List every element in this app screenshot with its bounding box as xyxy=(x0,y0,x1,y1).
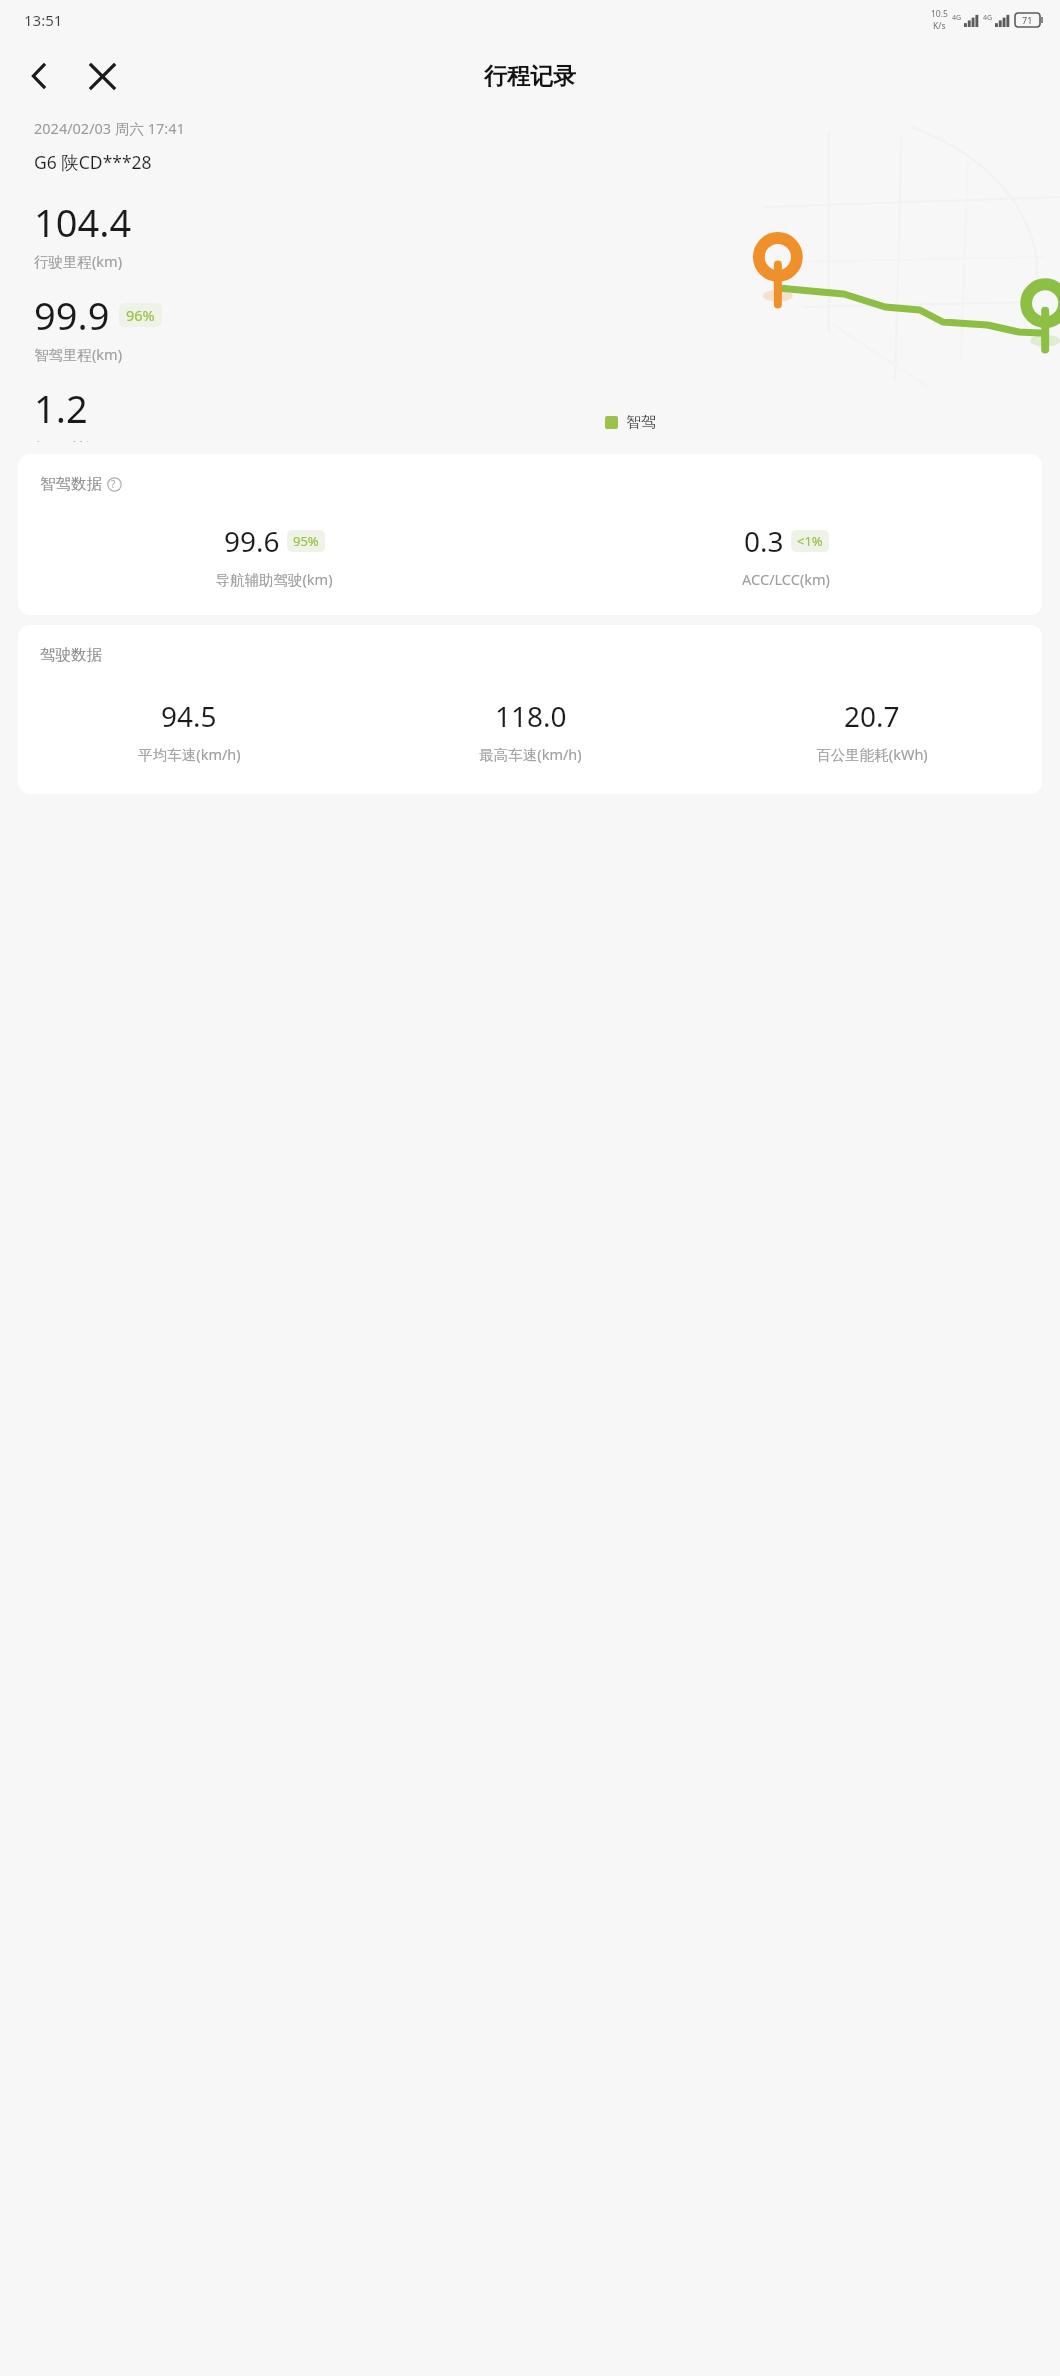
staticText: 2024/02/03 周六 17:41 xyxy=(34,118,185,138)
staticText: 118.0 xyxy=(495,697,567,735)
staticText: 71 xyxy=(1022,14,1033,26)
staticText: 平均车速(km/h) xyxy=(138,744,241,764)
staticText: 95% xyxy=(293,532,319,550)
staticText: 10.5 xyxy=(931,8,948,20)
staticText: 1.2 xyxy=(34,382,88,434)
staticText: 最高车速(km/h) xyxy=(479,744,582,764)
staticText: 104.4 xyxy=(34,196,132,248)
button[interactable]: 驾驶数据 xyxy=(18,625,1042,794)
staticText: <1% xyxy=(797,532,823,550)
staticText: 行驶里程(km) xyxy=(34,251,123,271)
staticText: 0.3 xyxy=(744,522,784,560)
staticText: 99.9 xyxy=(34,289,110,341)
staticText: 96% xyxy=(126,305,155,325)
staticText: K/s xyxy=(933,20,946,32)
staticText: 4G xyxy=(983,13,993,23)
staticText: 13:51 xyxy=(24,10,63,30)
staticText: 智驾 xyxy=(626,413,656,432)
button[interactable]: Close xyxy=(74,48,130,104)
staticText: 百公里能耗(kWh) xyxy=(816,744,928,764)
staticText: 4G xyxy=(952,13,962,23)
staticText: 20.7 xyxy=(844,697,900,735)
staticText: 行程记录 xyxy=(484,62,576,91)
staticText: 智驾数据 xyxy=(40,474,102,494)
staticText: 智驾里程(km) xyxy=(34,344,123,364)
staticText: G6 陕CD***28 xyxy=(34,150,152,174)
staticText: 行程时长(h) xyxy=(34,437,110,442)
button[interactable]: 智驾数据 xyxy=(18,454,1042,615)
staticText: 导航辅助驾驶(km) xyxy=(215,569,333,589)
button[interactable]: Back xyxy=(12,48,68,104)
staticText: 驾驶数据 xyxy=(40,645,102,665)
staticText: ACC/LCC(km) xyxy=(742,569,830,589)
staticText: 94.5 xyxy=(161,697,217,735)
staticText: ? xyxy=(111,477,116,491)
staticText: 99.6 xyxy=(224,522,280,560)
